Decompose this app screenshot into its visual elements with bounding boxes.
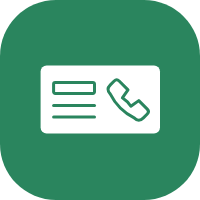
button[interactable]: Contact card — [0, 0, 200, 200]
